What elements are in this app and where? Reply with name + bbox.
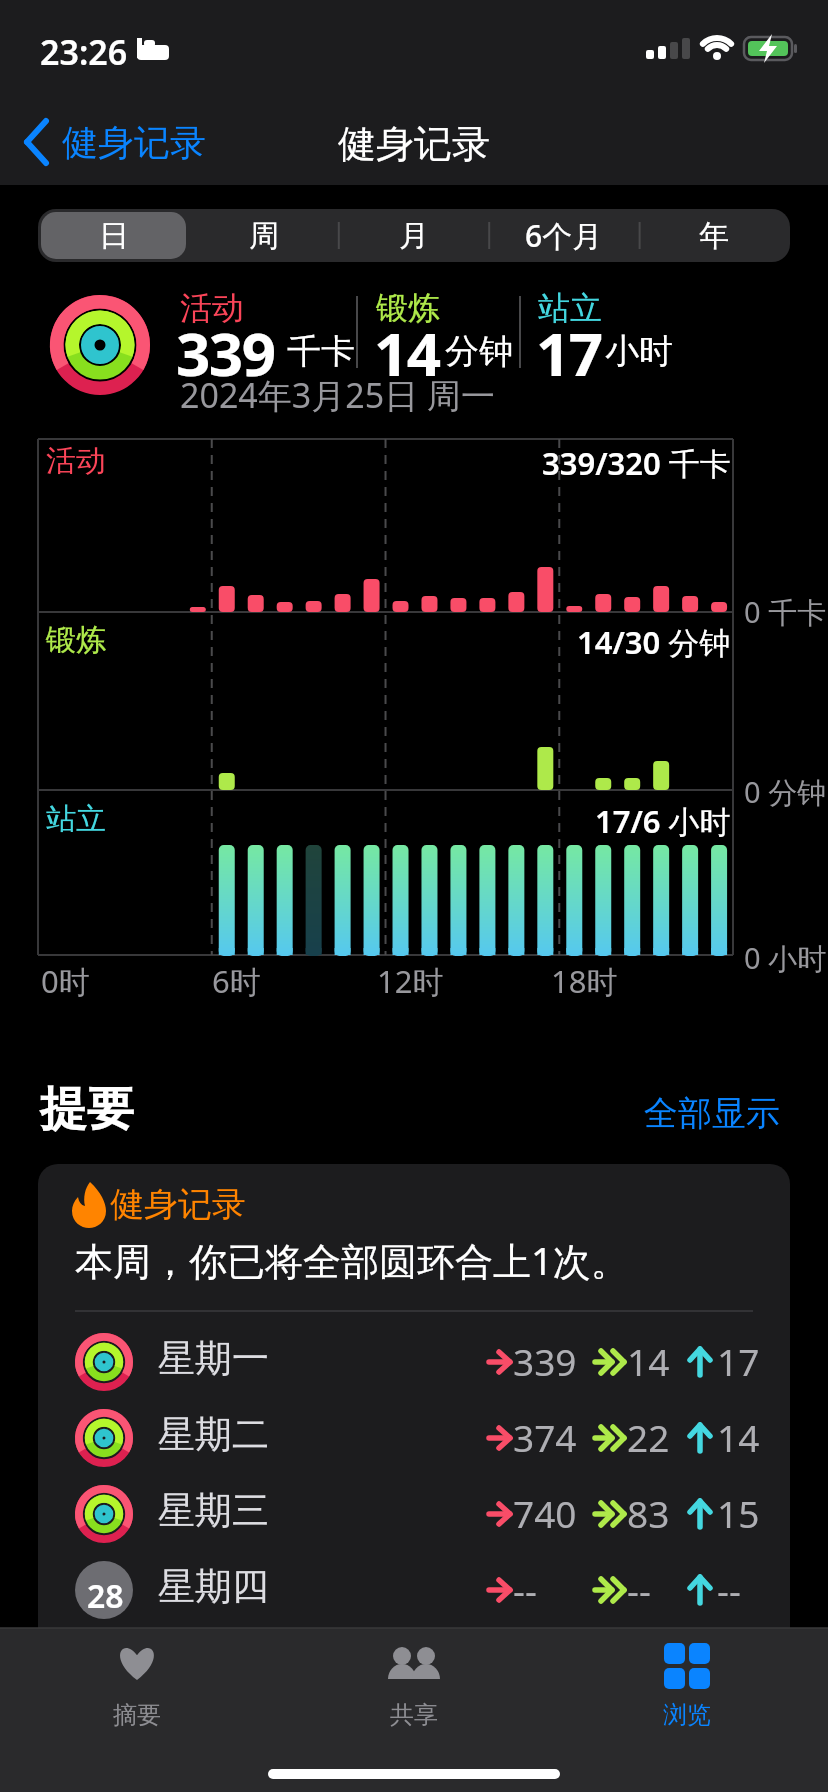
button[interactable]: 年 <box>638 209 789 262</box>
staticText: 339 <box>513 1336 577 1386</box>
button[interactable]: 共享 <box>334 1632 494 1730</box>
staticText: 17/6 小时 <box>595 800 731 842</box>
staticText: -- <box>513 1564 537 1614</box>
button[interactable]: 月 <box>338 209 489 262</box>
staticText: 339/320 千卡 <box>542 442 731 484</box>
staticText: 本周，你已将全部圆环合上1次。 <box>75 1234 629 1286</box>
button[interactable]: 6个月 <box>488 209 639 262</box>
staticText: -- <box>717 1564 741 1614</box>
staticText: 站立 <box>538 288 602 328</box>
staticText: 14 <box>717 1412 760 1462</box>
staticText: 15 <box>717 1488 760 1538</box>
staticText: 17 <box>536 312 602 394</box>
staticText: 18时 <box>551 960 618 1002</box>
staticText: 健身记录 <box>62 120 206 165</box>
button[interactable]: 日 <box>38 209 189 262</box>
staticText: 23:26 <box>40 29 128 75</box>
button[interactable]: 全部显示 <box>600 1092 780 1135</box>
staticText: 健身记录 <box>110 1183 246 1226</box>
staticText: 740 <box>513 1488 577 1538</box>
staticText: 14 <box>374 312 440 394</box>
staticText: 28 <box>87 1574 124 1618</box>
staticText: 千卡 <box>287 330 355 373</box>
staticText: 全部显示 <box>644 1092 780 1135</box>
button[interactable]: 健身记录 <box>38 1164 790 1792</box>
staticText: 2024年3月25日 周一 <box>180 372 495 418</box>
staticText: 活动 <box>46 442 106 480</box>
staticText: 22 <box>627 1412 670 1462</box>
staticText: 0 千卡 <box>744 592 827 632</box>
staticText: 站立 <box>46 800 106 838</box>
staticText: 分钟 <box>445 330 513 373</box>
button[interactable]: 浏览 <box>607 1632 767 1730</box>
button[interactable]: 健身记录 <box>20 115 220 171</box>
staticText: 周 <box>249 217 279 255</box>
staticText: 374 <box>513 1412 577 1462</box>
staticText: 0时 <box>41 960 90 1002</box>
staticText: 星期三 <box>158 1487 269 1534</box>
staticText: 83 <box>627 1488 670 1538</box>
staticText: 锻炼 <box>376 288 440 328</box>
staticText: 活动 <box>180 288 244 328</box>
staticText: 12时 <box>377 960 444 1002</box>
staticText: 月 <box>399 217 429 255</box>
staticText: 提要 <box>40 1080 134 1139</box>
button[interactable]: 摘要 <box>57 1632 217 1730</box>
staticText: 共享 <box>390 1700 438 1730</box>
staticText: 年 <box>699 217 729 255</box>
staticText: 小时 <box>605 330 673 373</box>
staticText: 健身记录 <box>338 120 490 168</box>
staticText: 14/30 分钟 <box>577 621 731 663</box>
staticText: 星期二 <box>158 1411 269 1458</box>
staticText: -- <box>627 1564 651 1614</box>
staticText: 锻炼 <box>46 621 106 659</box>
button[interactable]: 周 <box>188 209 339 262</box>
staticText: 6时 <box>212 960 261 1002</box>
staticText: 0 分钟 <box>744 772 827 812</box>
staticText: 星期一 <box>158 1335 269 1382</box>
staticText: 6个月 <box>525 215 603 256</box>
staticText: 浏览 <box>663 1700 711 1730</box>
staticText: 0 小时 <box>744 938 827 978</box>
staticText: 日 <box>99 217 129 255</box>
staticText: 14 <box>627 1336 670 1386</box>
staticText: 339 <box>176 312 275 394</box>
staticText: 星期四 <box>158 1563 269 1610</box>
staticText: 17 <box>717 1336 760 1386</box>
staticText: 摘要 <box>113 1700 161 1730</box>
